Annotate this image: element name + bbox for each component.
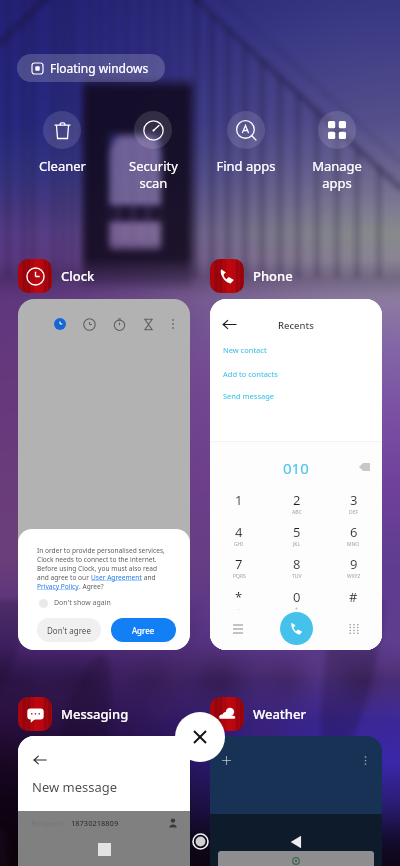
- button[interactable]: 8: [268, 550, 325, 582]
- staticText: Phone: [253, 267, 293, 285]
- staticText: Messaging: [61, 705, 129, 723]
- button[interactable]: Add city: [210, 736, 382, 866]
- button[interactable]: Backspace: [359, 463, 370, 471]
- button[interactable]: Floating windows: [17, 54, 165, 82]
- staticText: 6: [350, 523, 358, 541]
- staticText: User Agreement: [91, 573, 142, 582]
- button[interactable]: Timer: [135, 311, 161, 337]
- button[interactable]: Add to contacts: [210, 364, 382, 384]
- staticText: 0: [293, 588, 301, 606]
- staticText: Cleaner: [39, 157, 86, 175]
- staticText: ·: [238, 606, 240, 613]
- button[interactable]: Add city: [222, 756, 231, 765]
- staticText: #: [349, 588, 358, 606]
- button[interactable]: 6: [325, 518, 382, 550]
- staticText: JKL: [293, 541, 301, 548]
- staticText: DEF: [349, 509, 359, 516]
- staticText: Security scan: [129, 157, 178, 192]
- staticText: Don't show again: [54, 598, 111, 608]
- staticText: 3: [350, 491, 358, 509]
- button[interactable]: Security scan: [107, 111, 199, 192]
- staticText: WXYZ: [347, 573, 361, 580]
- button[interactable]: Send message: [210, 386, 382, 406]
- button[interactable]: 3: [325, 486, 382, 518]
- button[interactable]: Don't show again: [39, 598, 111, 608]
- staticText: 8: [293, 555, 301, 573]
- button[interactable]: Dialpad: [346, 621, 362, 637]
- staticText: 5: [293, 523, 301, 541]
- button[interactable]: Back: [18, 736, 190, 866]
- staticText: and: [142, 573, 156, 582]
- button[interactable]: 2: [268, 486, 325, 518]
- button[interactable]: #: [325, 582, 382, 614]
- button[interactable]: Alarm: [18, 299, 190, 650]
- staticText: 18730218809: [71, 818, 119, 828]
- staticText: 1: [235, 491, 243, 509]
- staticText: Weather: [253, 705, 306, 723]
- button[interactable]: Clock: [18, 259, 95, 293]
- staticText: 7: [235, 555, 243, 573]
- staticText: +: [295, 606, 298, 613]
- button[interactable]: Find apps: [200, 111, 292, 175]
- button[interactable]: 7: [210, 550, 268, 582]
- button[interactable]: 9: [325, 550, 382, 582]
- staticText: Add to contacts: [223, 369, 278, 379]
- staticText: Don't agree: [47, 625, 91, 636]
- staticText: Send message: [223, 391, 275, 401]
- button[interactable]: Close all: [175, 712, 225, 762]
- button[interactable]: Back: [30, 750, 50, 770]
- staticText: Agree: [132, 625, 155, 636]
- staticText: Clock: [61, 267, 95, 285]
- button[interactable]: Back: [219, 314, 239, 334]
- button[interactable]: Agree: [111, 618, 176, 642]
- button[interactable]: Back: [289, 835, 303, 849]
- staticText: 010: [283, 458, 309, 478]
- button[interactable]: Phone: [210, 259, 293, 293]
- button[interactable]: Stopwatch: [106, 311, 132, 337]
- button[interactable]: World clock: [76, 311, 102, 337]
- staticText: 9: [350, 555, 358, 573]
- button[interactable]: Cleaner: [16, 111, 108, 175]
- staticText: *: [235, 588, 243, 606]
- button[interactable]: 5: [268, 518, 325, 550]
- staticText: Before using Clock, you must also read: [37, 564, 158, 573]
- button[interactable]: Call log: [230, 621, 246, 637]
- button[interactable]: Messaging: [18, 697, 129, 731]
- staticText: ABC: [292, 509, 302, 516]
- button[interactable]: More options: [160, 311, 186, 337]
- staticText: GHI: [234, 541, 244, 548]
- staticText: Floating windows: [50, 60, 149, 76]
- button[interactable]: Don't agree: [37, 618, 101, 642]
- staticText: Privacy Policy: [37, 582, 79, 591]
- staticText: New contact: [223, 345, 267, 355]
- button[interactable]: *: [210, 582, 268, 614]
- staticText: New message: [32, 778, 118, 796]
- staticText: Manage apps: [312, 157, 362, 192]
- staticText: 2: [293, 491, 301, 509]
- button[interactable]: Manage apps: [291, 111, 383, 192]
- staticText: PQRS: [233, 573, 246, 580]
- staticText: . Agree?: [79, 582, 104, 591]
- button[interactable]: Alarm: [47, 311, 73, 337]
- staticText: Recents: [278, 319, 314, 332]
- staticText: In order to provide personalised service…: [37, 546, 165, 555]
- button[interactable]: 1: [210, 486, 268, 518]
- staticText: and agree to our: [37, 573, 91, 582]
- staticText: 4: [235, 523, 243, 541]
- staticText: MNO: [347, 541, 360, 548]
- button[interactable]: Call: [280, 612, 313, 645]
- button[interactable]: 0: [268, 582, 325, 614]
- button[interactable]: More options: [361, 756, 370, 765]
- button[interactable]: Back: [210, 299, 382, 650]
- staticText: TUV: [292, 573, 302, 580]
- button[interactable]: Weather: [210, 697, 306, 731]
- staticText: Find apps: [216, 157, 276, 175]
- button[interactable]: 4: [210, 518, 268, 550]
- button[interactable]: New contact: [210, 340, 382, 360]
- staticText: Clock needs to connect to the internet.: [37, 555, 157, 564]
- other: Home: [193, 834, 208, 849]
